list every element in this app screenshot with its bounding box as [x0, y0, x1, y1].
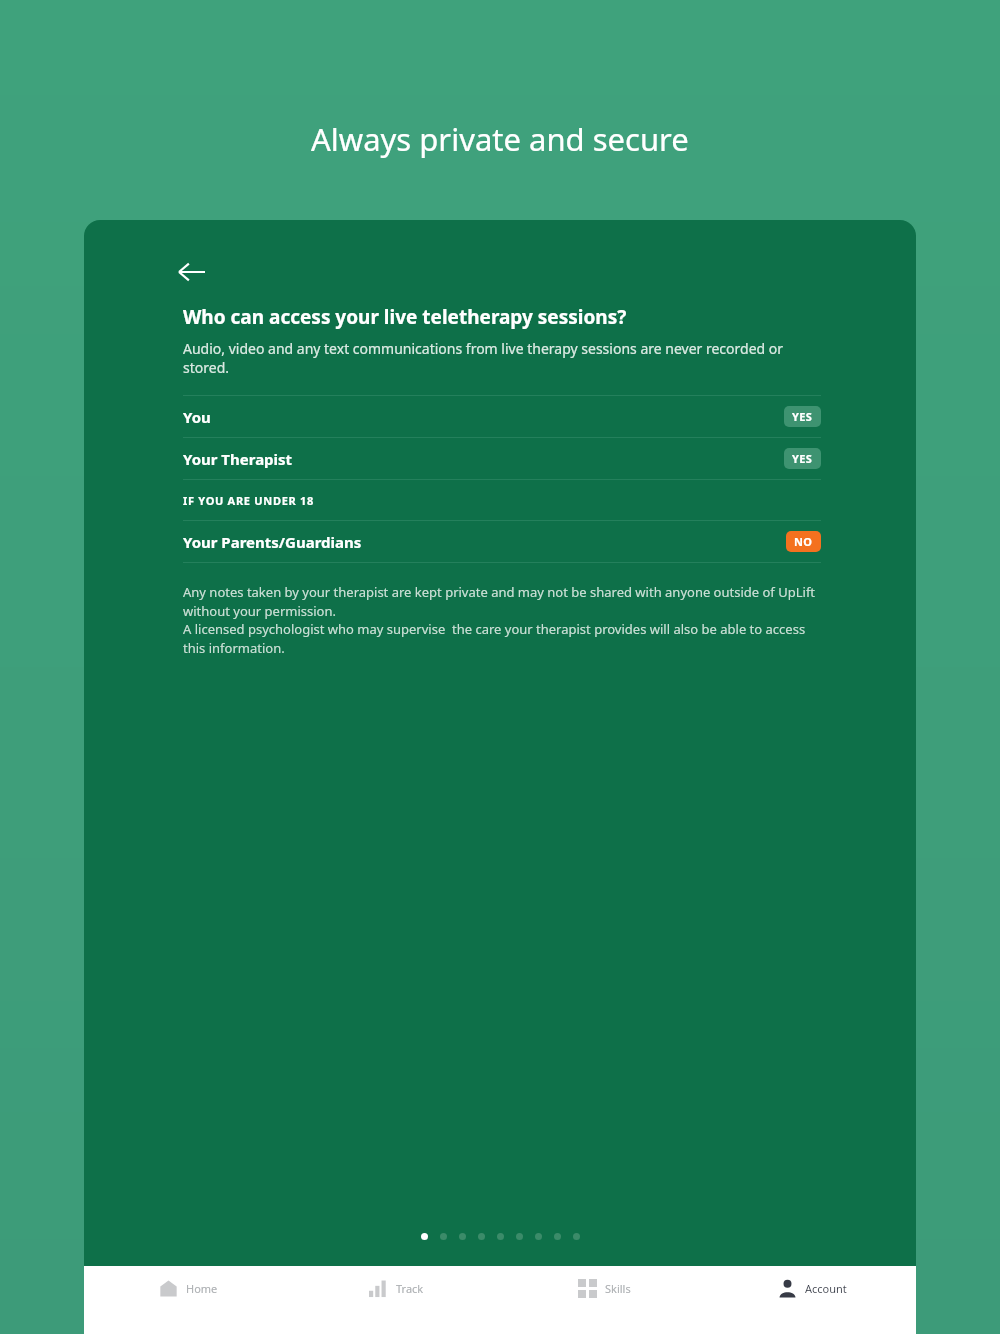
button[interactable]: Skills [500, 1266, 708, 1334]
button[interactable]: Your Parents/Guardians [84, 521, 916, 562]
staticText: Track [396, 1281, 424, 1296]
staticText: You [183, 407, 211, 427]
button[interactable]: Back [170, 250, 214, 294]
staticText: Account [805, 1281, 847, 1296]
button[interactable]: You [84, 396, 916, 437]
staticText: Audio, video and any text communications… [183, 339, 817, 377]
staticText: A licensed psychologist who may supervis… [183, 620, 821, 657]
button[interactable]: Account [708, 1266, 916, 1334]
button[interactable]: Your Therapist [84, 438, 916, 479]
staticText: YES [792, 451, 813, 466]
staticText: Your Therapist [183, 449, 293, 469]
staticText: IF YOU ARE UNDER 18 [183, 493, 314, 508]
button[interactable]: Track [292, 1266, 500, 1334]
staticText: Any notes taken by your therapist are ke… [183, 583, 821, 620]
staticText: YES [792, 409, 813, 424]
staticText: Who can access your live teletherapy ses… [183, 304, 627, 330]
staticText: Skills [605, 1281, 631, 1296]
button[interactable]: Home [84, 1266, 292, 1334]
staticText: NO [794, 534, 813, 549]
staticText: Always private and secure [311, 118, 689, 160]
staticText: Your Parents/Guardians [183, 532, 362, 552]
staticText: Home [186, 1281, 218, 1296]
